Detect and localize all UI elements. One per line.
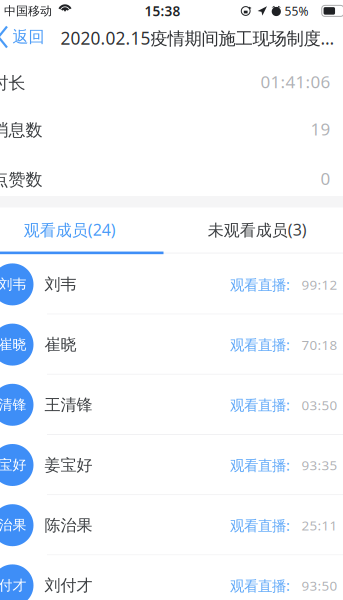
button[interactable]: 未观看成员(3) xyxy=(163,208,343,252)
staticText: 观看直播: xyxy=(230,516,290,535)
staticText: 未观看成员(3) xyxy=(208,219,307,240)
button[interactable]: 崔晓 xyxy=(0,315,343,375)
staticText: 2020.02.15疫情期间施工现场制度… xyxy=(60,26,334,49)
button[interactable]: 刘韦 xyxy=(0,254,343,315)
staticText: 93:35 xyxy=(302,456,338,474)
staticText: 崔晓 xyxy=(44,335,76,355)
staticText: 陈治果 xyxy=(44,515,92,535)
button[interactable]: 宝好 xyxy=(0,435,343,495)
staticText: 点赞数 xyxy=(0,169,42,190)
staticText: 宝好 xyxy=(0,456,26,473)
staticText: 99:12 xyxy=(302,276,338,293)
staticText: 93:50 xyxy=(302,577,338,594)
staticText: 刘韦 xyxy=(0,276,26,293)
staticText: 崔晓 xyxy=(0,336,26,353)
staticText: 刘付才 xyxy=(44,576,92,595)
button[interactable]: 治果 xyxy=(0,495,343,555)
staticText: 观看直播: xyxy=(230,576,290,595)
staticText: 刘韦 xyxy=(44,275,76,294)
staticText: 55% xyxy=(284,3,308,19)
staticText: 消息数 xyxy=(0,120,42,141)
button[interactable]: 付才 xyxy=(0,555,343,600)
staticText: 观看直播: xyxy=(230,335,290,354)
staticText: 19 xyxy=(310,118,330,140)
staticText: 清锋 xyxy=(0,396,26,413)
staticText: 王清锋 xyxy=(44,395,92,415)
staticText: 观看成员(24) xyxy=(24,219,116,240)
button[interactable]: 返回 xyxy=(0,19,49,54)
staticText: 中国移动 xyxy=(4,4,52,18)
staticText: 观看直播: xyxy=(230,455,290,475)
staticText: 治果 xyxy=(0,517,26,534)
staticText: 姜宝好 xyxy=(44,455,92,475)
staticText: 03:50 xyxy=(302,396,338,414)
staticText: 70:18 xyxy=(302,336,338,354)
staticText: 付才 xyxy=(0,577,26,594)
staticText: 25:11 xyxy=(302,516,338,534)
staticText: 15:38 xyxy=(144,2,180,20)
staticText: 时长 xyxy=(0,73,25,93)
staticText: 返回 xyxy=(12,27,44,47)
staticText: 观看直播: xyxy=(230,275,290,294)
staticText: 01:41:06 xyxy=(260,70,330,93)
button[interactable]: 观看成员(24) xyxy=(0,208,163,252)
staticText: 0 xyxy=(320,167,330,190)
staticText: 观看直播: xyxy=(230,395,290,414)
button[interactable]: 清锋 xyxy=(0,375,343,435)
